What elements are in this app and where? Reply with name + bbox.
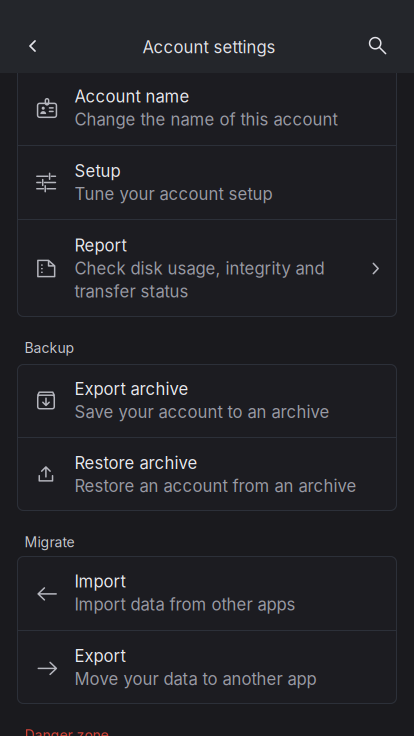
staticText: Migrate <box>24 534 78 550</box>
staticText: Restore an account from an archive <box>74 476 361 496</box>
staticText: Move your data to another app <box>74 669 321 689</box>
button[interactable]: Search <box>356 24 400 68</box>
button[interactable]: Export <box>17 631 397 704</box>
button[interactable]: Restore archive <box>17 438 397 511</box>
staticText: Tune your account setup <box>74 184 277 204</box>
staticText: Backup <box>24 339 78 356</box>
staticText: Restore archive <box>74 453 202 473</box>
button[interactable]: Report <box>17 220 397 317</box>
staticText: Check disk usage, integrity and transfer… <box>74 258 324 301</box>
button[interactable]: Back <box>10 24 54 68</box>
staticText: Danger zone <box>24 727 112 736</box>
staticText: Save your account to an archive <box>74 402 334 422</box>
button[interactable]: Account name <box>17 71 397 145</box>
staticText: Export archive <box>74 379 193 399</box>
staticText: Setup <box>74 161 125 181</box>
staticText: Change the name of this account <box>74 109 342 130</box>
staticText: Report <box>74 235 131 256</box>
button[interactable]: Export archive <box>17 364 397 437</box>
staticText: Import data from other apps <box>74 594 300 615</box>
staticText: Import <box>74 571 130 592</box>
button[interactable]: Import <box>17 556 397 630</box>
staticText: Account settings <box>142 37 280 57</box>
button[interactable]: Setup <box>17 146 397 219</box>
staticText: Account name <box>74 86 194 107</box>
staticText: Export <box>74 646 130 666</box>
